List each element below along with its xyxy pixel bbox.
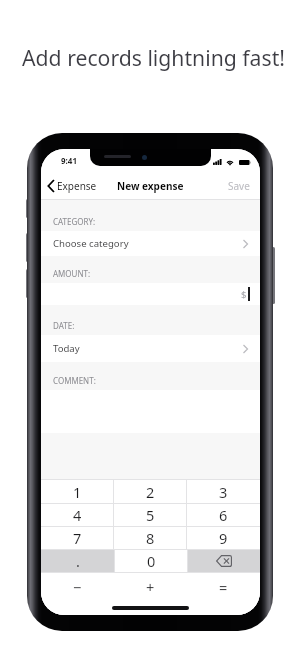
staticText: COMMENT: bbox=[53, 375, 96, 386]
staticText: 9:41 bbox=[61, 155, 77, 166]
staticText: 1 bbox=[73, 482, 82, 502]
staticText: Expense bbox=[57, 179, 97, 193]
button[interactable]: 4 bbox=[41, 504, 114, 526]
button[interactable]: Backspace bbox=[188, 550, 260, 572]
staticText: . bbox=[76, 551, 80, 571]
staticText: Today bbox=[53, 342, 80, 355]
button[interactable]: 0 bbox=[115, 550, 187, 572]
button[interactable]: 2 bbox=[114, 480, 187, 503]
button[interactable]: Save bbox=[218, 173, 260, 199]
staticText: = bbox=[219, 577, 228, 597]
button[interactable]: 3 bbox=[187, 480, 260, 503]
staticText: 8 bbox=[146, 528, 155, 548]
staticText: 4 bbox=[73, 505, 82, 525]
staticText: DATE: bbox=[53, 320, 75, 331]
staticText: + bbox=[146, 577, 155, 597]
staticText: Add records lightning fast! bbox=[22, 43, 285, 72]
staticText: Choose category bbox=[53, 237, 129, 250]
button[interactable]: 1 bbox=[41, 480, 114, 503]
staticText: 7 bbox=[73, 528, 82, 548]
button[interactable]: . bbox=[41, 550, 114, 572]
staticText: 0 bbox=[147, 551, 156, 571]
staticText: AMOUNT: bbox=[53, 268, 91, 279]
button[interactable]: = bbox=[187, 573, 260, 600]
staticText: 2 bbox=[146, 482, 155, 502]
staticText: − bbox=[73, 577, 82, 597]
staticText: $ bbox=[241, 288, 247, 301]
button[interactable]: − bbox=[41, 573, 114, 600]
button[interactable]: 6 bbox=[187, 504, 260, 526]
staticText: 9 bbox=[219, 528, 228, 548]
staticText: New expense bbox=[117, 179, 184, 193]
staticText: 5 bbox=[146, 505, 155, 525]
button[interactable]: Choose category bbox=[41, 231, 260, 256]
button[interactable]: 8 bbox=[114, 527, 187, 549]
button[interactable]: $ bbox=[41, 283, 260, 305]
button[interactable]: + bbox=[114, 573, 187, 600]
staticText: 6 bbox=[219, 505, 228, 525]
button[interactable]: 7 bbox=[41, 527, 114, 549]
staticText: 3 bbox=[219, 482, 228, 502]
staticText: CATEGORY: bbox=[53, 216, 96, 227]
button[interactable]: 9 bbox=[187, 527, 260, 549]
button[interactable]: 5 bbox=[114, 504, 187, 526]
button[interactable]: Today bbox=[41, 335, 260, 362]
button[interactable]: Expense bbox=[41, 175, 103, 197]
